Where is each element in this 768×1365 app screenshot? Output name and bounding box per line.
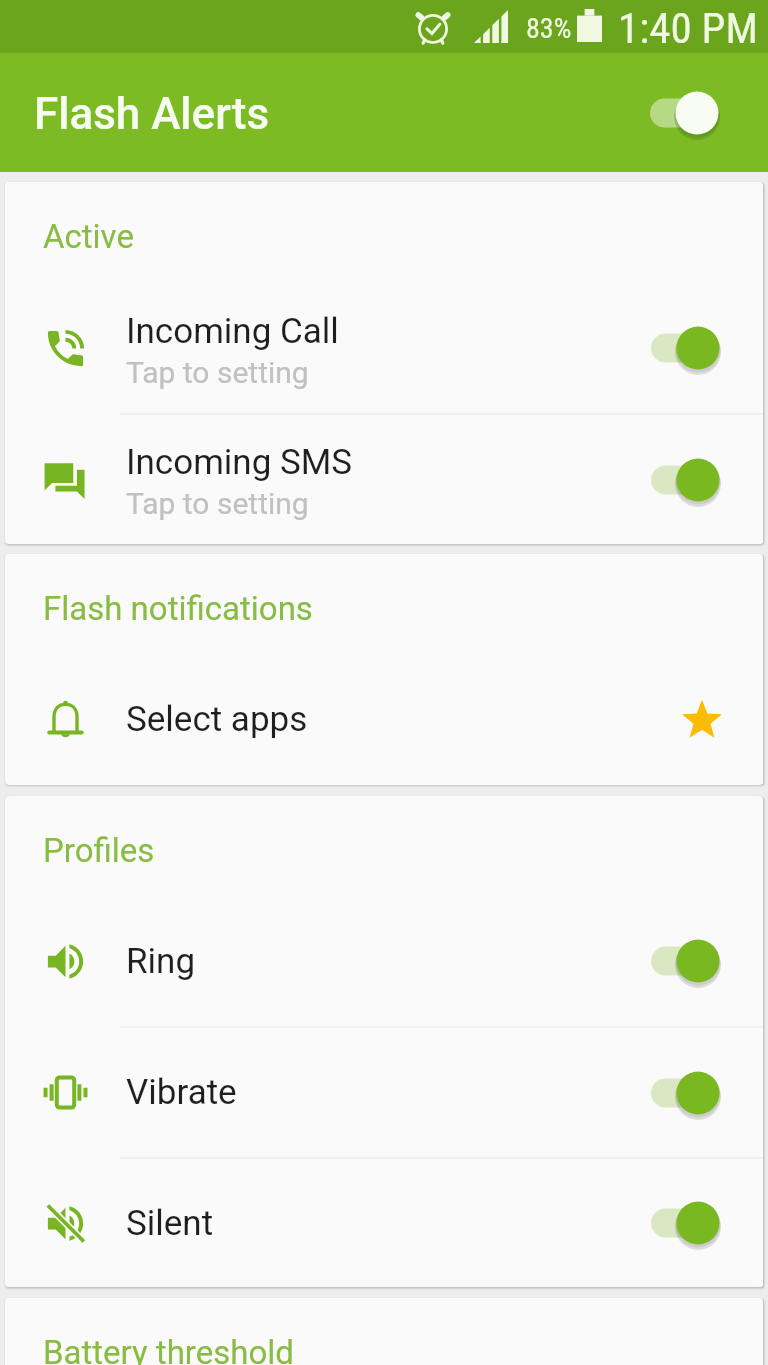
- button[interactable]: Toggle Incoming SMS: [651, 452, 720, 508]
- staticText: Active: [43, 217, 134, 256]
- button[interactable]: Incoming Call: [5, 283, 763, 413]
- staticText: 1:40 PM: [618, 3, 758, 53]
- staticText: Battery threshold: [43, 1333, 294, 1365]
- button[interactable]: Silent: [5, 1159, 763, 1287]
- staticText: Flash Alerts: [34, 88, 270, 140]
- staticText: Select apps: [126, 699, 308, 740]
- staticText: 83%: [526, 12, 572, 45]
- button[interactable]: Favorite: [668, 686, 736, 754]
- button[interactable]: Toggle Incoming Call: [651, 320, 720, 376]
- button[interactable]: Toggle Vibrate: [651, 1065, 720, 1121]
- staticText: Incoming SMS: [126, 442, 353, 483]
- staticText: Tap to setting: [126, 486, 309, 521]
- staticText: Ring: [126, 941, 196, 982]
- button[interactable]: Incoming SMS: [5, 415, 763, 544]
- staticText: Incoming Call: [126, 311, 339, 352]
- button[interactable]: Select apps: [5, 654, 763, 785]
- staticText: Vibrate: [126, 1072, 237, 1113]
- button[interactable]: Toggle Ring: [651, 933, 720, 989]
- button[interactable]: Ring: [5, 896, 763, 1026]
- button[interactable]: Toggle Silent: [651, 1195, 720, 1251]
- staticText: Tap to setting: [126, 355, 309, 390]
- button[interactable]: Enable flash alerts: [650, 85, 719, 141]
- staticText: Silent: [126, 1203, 214, 1244]
- staticText: Profiles: [43, 831, 155, 870]
- staticText: Flash notifications: [43, 589, 313, 628]
- button[interactable]: Vibrate: [5, 1028, 763, 1157]
